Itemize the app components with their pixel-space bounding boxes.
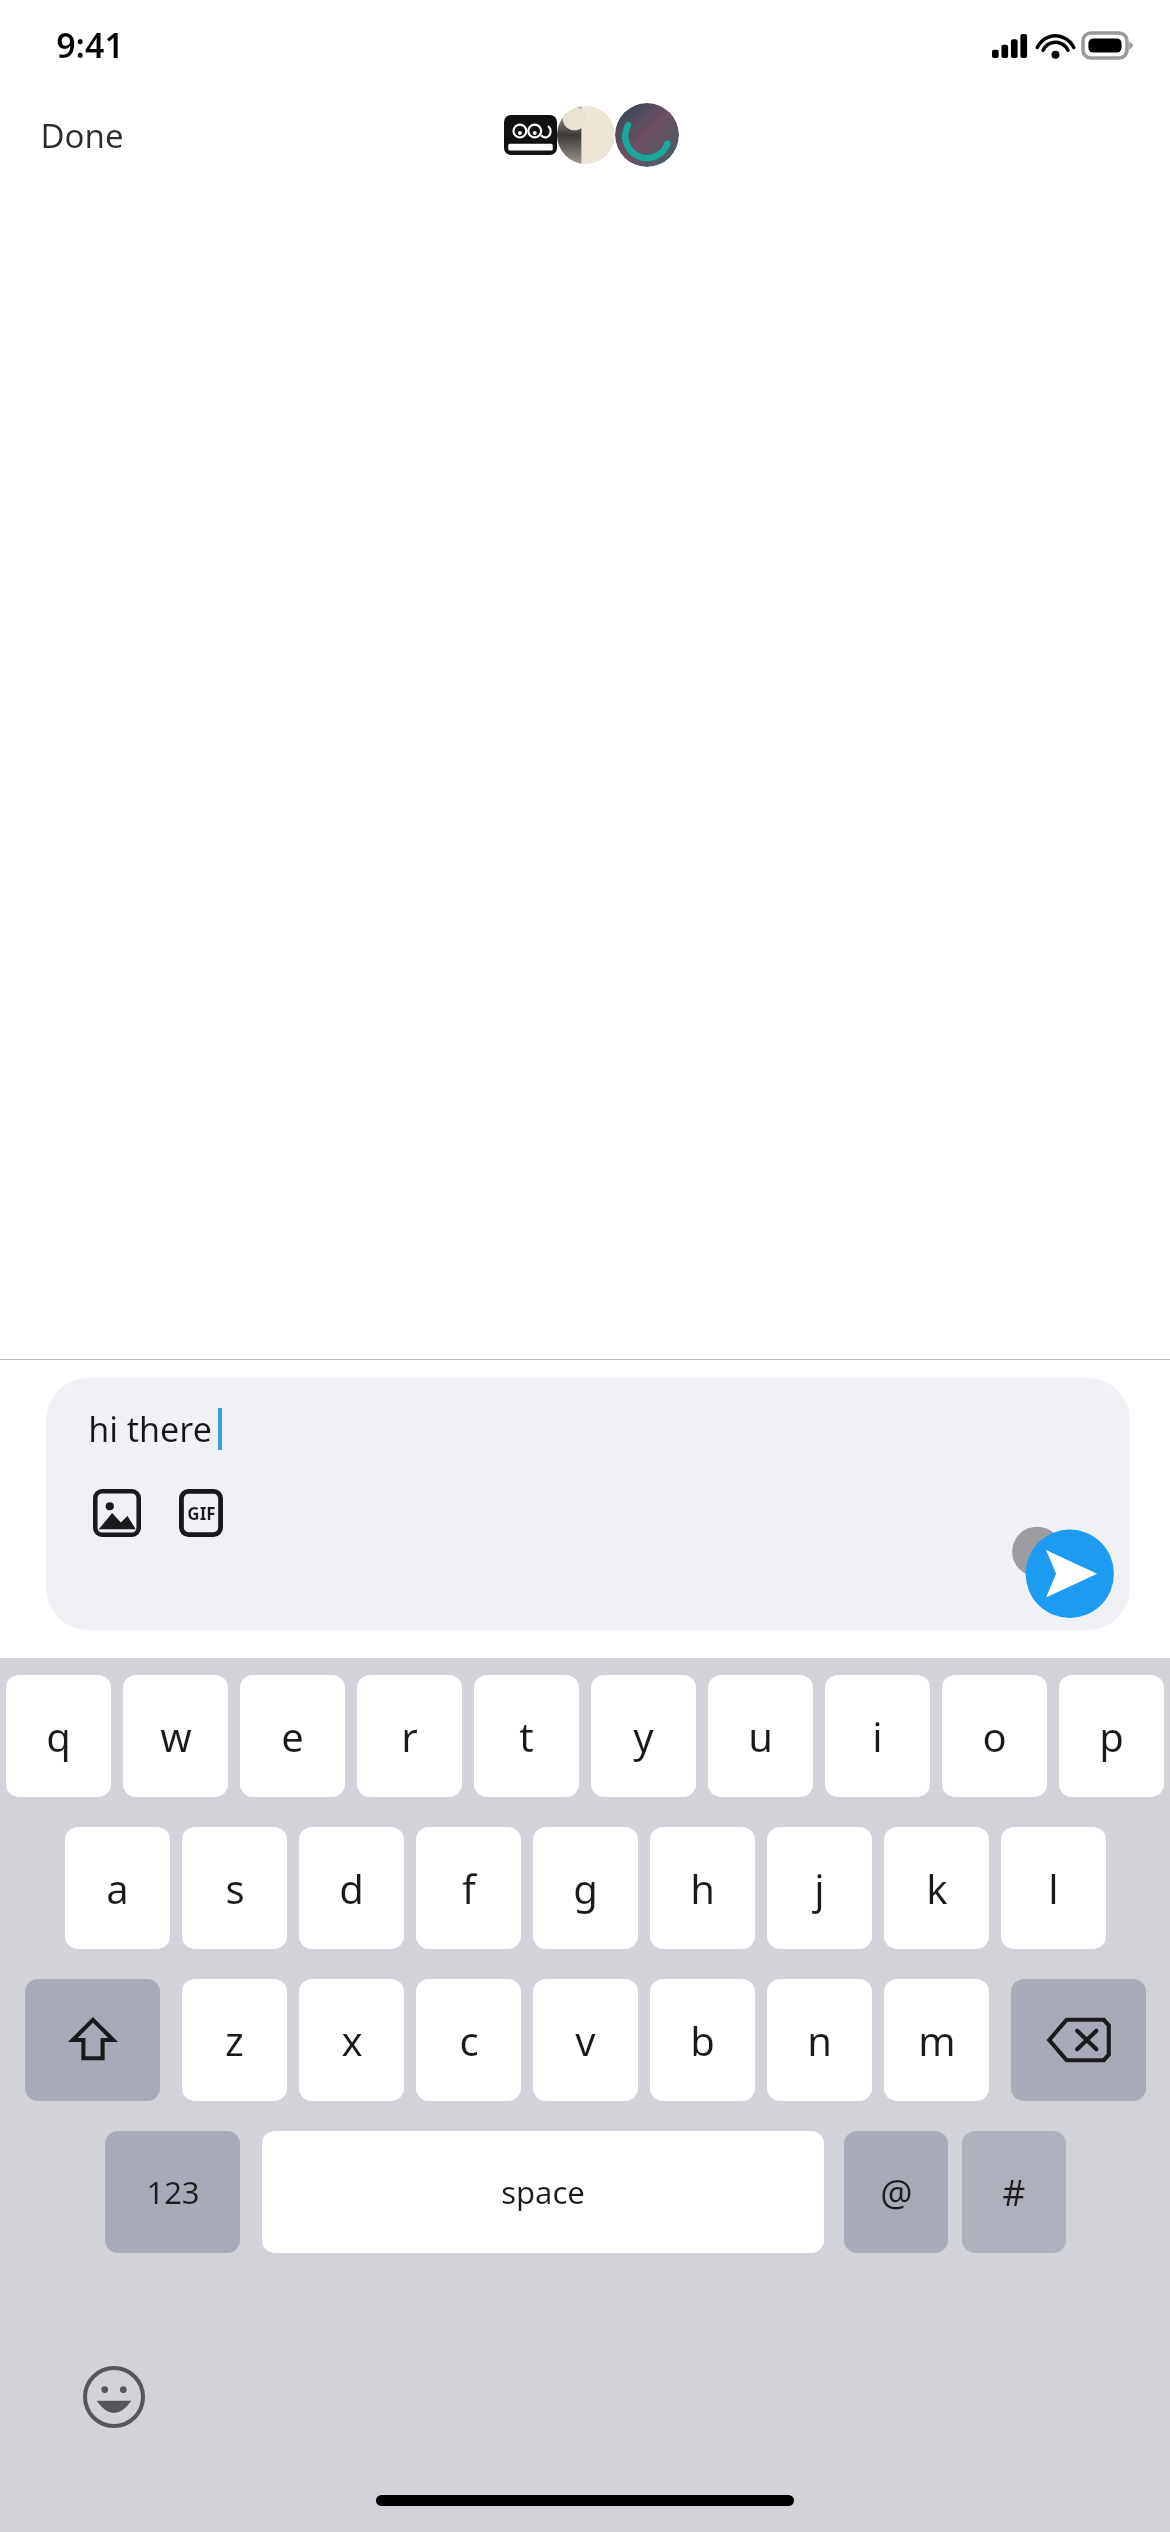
staticText: n: [807, 2013, 832, 2067]
button[interactable]: p: [1059, 1675, 1164, 1797]
button[interactable]: Attachment 2: [557, 106, 615, 164]
staticText: 123: [146, 2171, 200, 2213]
staticText: u: [748, 1709, 773, 1763]
button[interactable]: #: [962, 2131, 1066, 2253]
staticText: q: [46, 1709, 71, 1763]
staticText: g: [573, 1861, 598, 1915]
button[interactable]: w: [123, 1675, 228, 1797]
staticText: space: [501, 2171, 585, 2213]
staticText: a: [106, 1861, 129, 1915]
staticText: hi there: [88, 1406, 212, 1452]
button[interactable]: n: [767, 1979, 872, 2101]
button[interactable]: t: [474, 1675, 579, 1797]
button[interactable]: g: [533, 1827, 638, 1949]
button[interactable]: Attachment 1: [504, 115, 557, 155]
staticText: i: [872, 1709, 883, 1763]
button[interactable]: @: [844, 2131, 948, 2253]
button[interactable]: f: [416, 1827, 521, 1949]
button[interactable]: Add GIF: [172, 1484, 230, 1542]
staticText: t: [519, 1709, 534, 1763]
staticText: l: [1048, 1861, 1059, 1915]
button[interactable]: Shift: [25, 1979, 160, 2101]
button[interactable]: space: [262, 2131, 824, 2253]
button[interactable]: d: [299, 1827, 404, 1949]
button[interactable]: i: [825, 1675, 930, 1797]
button[interactable]: o: [942, 1675, 1047, 1797]
staticText: b: [690, 2013, 715, 2067]
staticText: r: [401, 1709, 418, 1763]
button[interactable]: r: [357, 1675, 462, 1797]
staticText: e: [281, 1709, 304, 1763]
staticText: d: [339, 1861, 364, 1915]
staticText: w: [160, 1709, 192, 1763]
button[interactable]: y: [591, 1675, 696, 1797]
staticText: p: [1099, 1709, 1124, 1763]
button[interactable]: c: [416, 1979, 521, 2101]
button[interactable]: x: [299, 1979, 404, 2101]
staticText: s: [225, 1861, 245, 1915]
staticText: 9:41: [56, 22, 124, 68]
button[interactable]: e: [240, 1675, 345, 1797]
staticText: Done: [40, 113, 124, 158]
staticText: h: [690, 1861, 715, 1915]
button[interactable]: Done: [34, 107, 130, 164]
staticText: c: [459, 2013, 479, 2067]
button[interactable]: b: [650, 1979, 755, 2101]
button[interactable]: a: [65, 1827, 170, 1949]
button[interactable]: v: [533, 1979, 638, 2101]
staticText: f: [462, 1861, 476, 1915]
button[interactable]: Attachment 3: [615, 103, 679, 167]
staticText: k: [926, 1861, 948, 1915]
button[interactable]: 123: [105, 2131, 240, 2253]
button[interactable]: Send: [1016, 1520, 1112, 1616]
button[interactable]: u: [708, 1675, 813, 1797]
staticText: m: [918, 2013, 956, 2067]
staticText: @: [880, 2168, 913, 2217]
button[interactable]: l: [1001, 1827, 1106, 1949]
staticText: x: [341, 2013, 363, 2067]
staticText: j: [814, 1861, 825, 1915]
staticText: GIF: [187, 1502, 216, 1525]
button[interactable]: m: [884, 1979, 989, 2101]
staticText: #: [1002, 2168, 1026, 2217]
button[interactable]: Delete: [1011, 1979, 1146, 2101]
staticText: y: [633, 1709, 654, 1763]
button[interactable]: h: [650, 1827, 755, 1949]
button[interactable]: q: [6, 1675, 111, 1797]
button[interactable]: Emoji: [78, 2361, 150, 2433]
button[interactable]: z: [182, 1979, 287, 2101]
button[interactable]: k: [884, 1827, 989, 1949]
button[interactable]: s: [182, 1827, 287, 1949]
button[interactable]: Add photo: [88, 1484, 146, 1542]
staticText: z: [225, 2013, 244, 2067]
button[interactable]: j: [767, 1827, 872, 1949]
staticText: v: [575, 2013, 596, 2067]
staticText: o: [982, 1709, 1007, 1763]
